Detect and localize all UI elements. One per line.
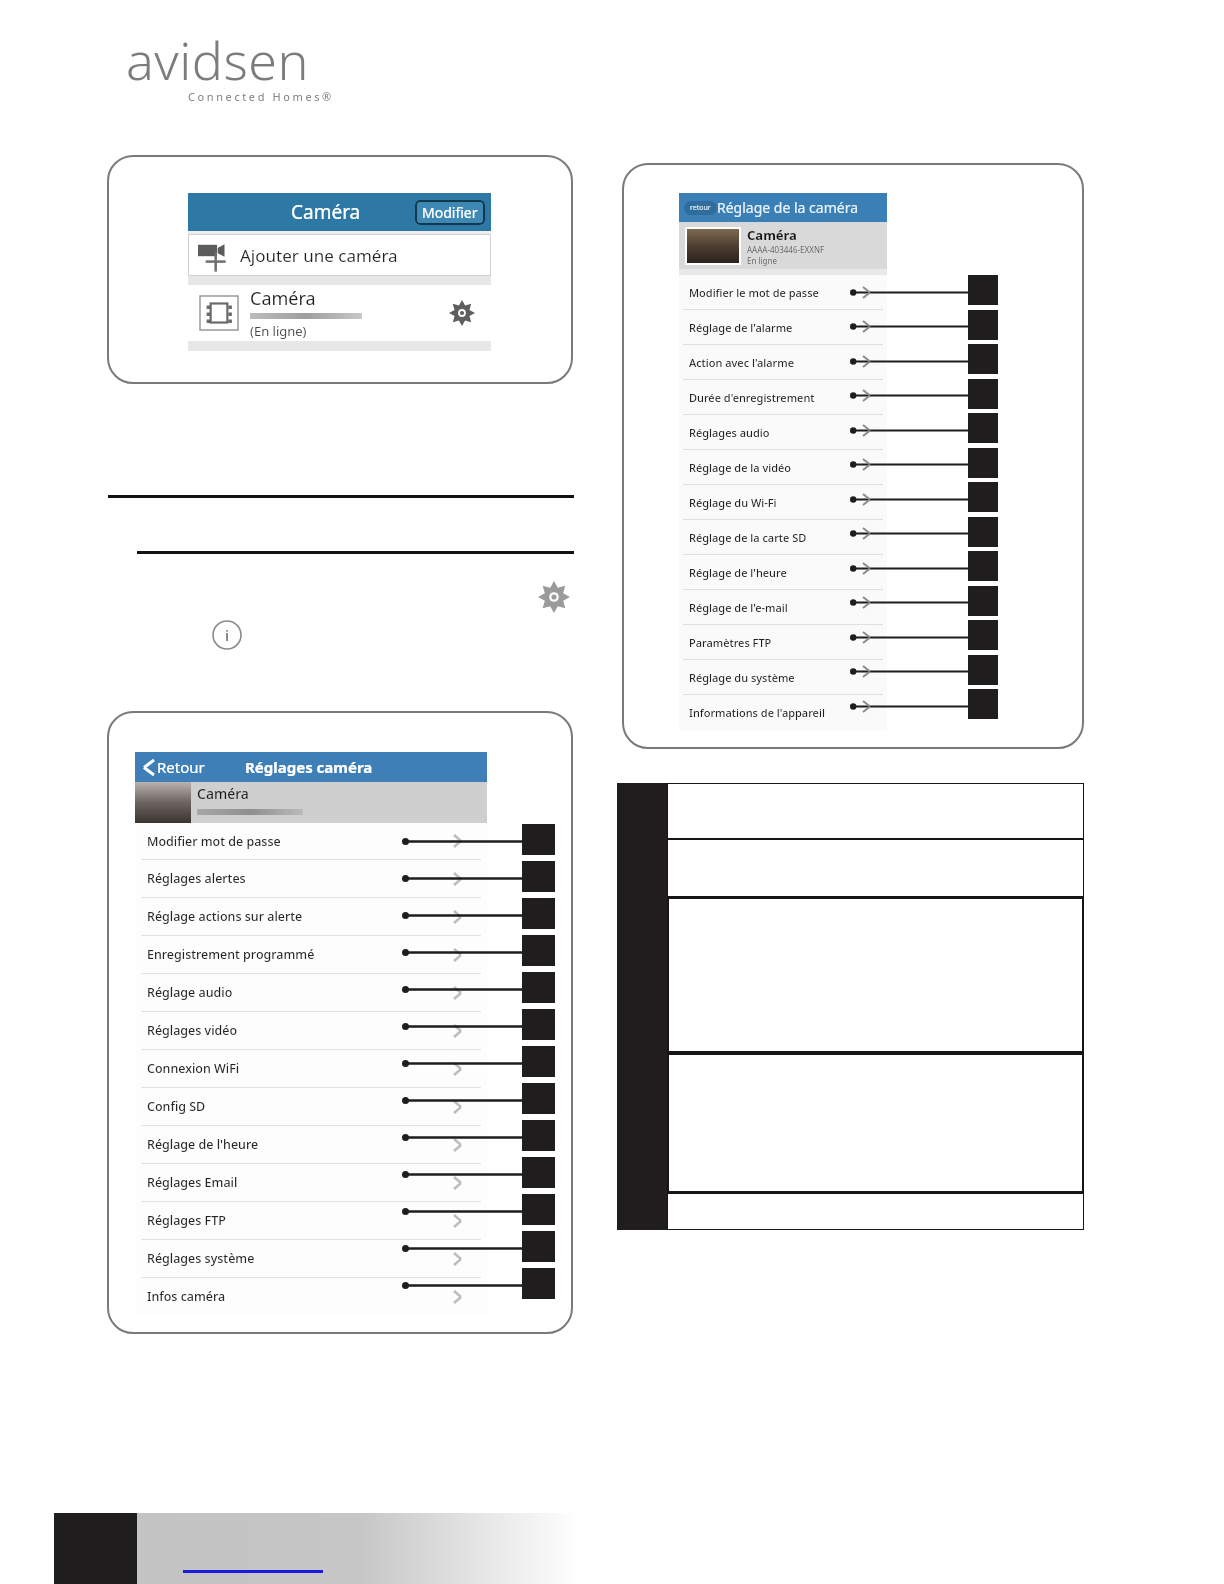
button[interactable]: Modifier <box>415 200 485 225</box>
staticText: Réglages caméra <box>245 757 373 777</box>
staticText: Réglages vidéo <box>147 1022 238 1039</box>
button[interactable]: Réglage de la carte SD <box>679 520 887 555</box>
button[interactable]: Réglages Email <box>135 1164 487 1201</box>
staticText: Caméra <box>250 286 316 311</box>
staticText: Réglages FTP <box>147 1212 226 1229</box>
staticText: Réglages système <box>147 1250 255 1267</box>
staticText: AAAA-403446-EXXNF <box>747 244 825 255</box>
button[interactable]: Réglage audio <box>135 974 487 1011</box>
button[interactable]: Réglage de la vidéo <box>679 450 887 485</box>
button[interactable]: Paramètres caméra <box>449 300 475 326</box>
button[interactable]: Informations <box>212 620 242 650</box>
staticText: Infos caméra <box>147 1288 226 1305</box>
staticText: Caméra <box>747 226 797 244</box>
button[interactable]: Connexion WiFi <box>135 1050 487 1087</box>
staticText: Caméra <box>291 199 361 225</box>
button[interactable]: Réglage de l'heure <box>679 555 887 590</box>
button[interactable]: Durée d'enregistrement <box>679 380 887 415</box>
staticText: Paramètres FTP <box>689 635 772 650</box>
button[interactable]: Réglage de l'e-mail <box>679 590 887 625</box>
button[interactable]: Réglage de l'alarme <box>679 310 887 345</box>
button[interactable]: Caméra <box>188 285 491 341</box>
button[interactable]: Réglages audio <box>679 415 887 450</box>
staticText: retour <box>690 203 711 213</box>
staticText: Connexion WiFi <box>147 1060 240 1077</box>
button[interactable]: Paramètres FTP <box>679 625 887 660</box>
staticText: En ligne <box>747 255 777 266</box>
button[interactable]: Modifier mot de passe <box>135 823 487 859</box>
button[interactable]: Ajouter une caméra <box>188 234 491 276</box>
staticText: Réglage audio <box>147 984 233 1001</box>
staticText: Informations de l'appareil <box>689 705 825 720</box>
staticText: avidsen <box>126 24 309 95</box>
staticText: Config SD <box>147 1098 206 1115</box>
staticText: Connected Homes® <box>188 89 334 104</box>
button[interactable]: Réglages vidéo <box>135 1012 487 1049</box>
staticText: Modifier le mot de passe <box>689 285 819 300</box>
button[interactable]: Réglage du système <box>679 660 887 695</box>
button[interactable]: Réglages FTP <box>135 1202 487 1239</box>
staticText: Réglage du système <box>689 670 795 685</box>
staticText: Enregistrement programmé <box>147 946 315 963</box>
button[interactable]: retour <box>684 201 717 215</box>
staticText: Réglage de l'heure <box>147 1136 259 1153</box>
button[interactable]: Réglage de l'heure <box>135 1126 487 1163</box>
button[interactable]: Retour <box>135 757 487 777</box>
staticText: Réglage de l'heure <box>689 565 787 580</box>
button[interactable]: Réglage actions sur alerte <box>135 898 487 935</box>
staticText: Durée d'enregistrement <box>689 390 815 405</box>
staticText: Ajouter une caméra <box>240 244 398 267</box>
staticText: Modifier mot de passe <box>147 833 281 850</box>
button[interactable]: Réglages <box>538 581 570 613</box>
button[interactable]: Réglage du Wi-Fi <box>679 485 887 520</box>
button[interactable]: Réglages système <box>135 1240 487 1277</box>
staticText: (En ligne) <box>250 322 307 340</box>
staticText: i <box>225 625 230 645</box>
staticText: Réglage de la carte SD <box>689 530 807 545</box>
button[interactable]: Infos caméra <box>135 1278 487 1315</box>
staticText: Réglage de l'alarme <box>689 320 793 335</box>
staticText: Réglage de l'e-mail <box>689 600 788 615</box>
staticText: Réglage du Wi-Fi <box>689 495 777 510</box>
button[interactable]: Modifier le mot de passe <box>679 275 887 310</box>
staticText: Réglages audio <box>689 425 770 440</box>
staticText: Réglage actions sur alerte <box>147 908 303 925</box>
staticText: Réglages Email <box>147 1174 238 1191</box>
staticText: Caméra <box>197 784 249 803</box>
button[interactable]: Config SD <box>135 1088 487 1125</box>
staticText: Modifier <box>422 203 478 222</box>
button[interactable]: Action avec l'alarme <box>679 345 887 380</box>
staticText: Réglages alertes <box>147 870 246 887</box>
staticText: Réglage de la caméra <box>717 198 858 217</box>
button[interactable]: Réglages alertes <box>135 860 487 897</box>
button[interactable]: Informations de l'appareil <box>679 695 887 730</box>
button[interactable]: Enregistrement programmé <box>135 936 487 973</box>
staticText: Action avec l'alarme <box>689 355 795 370</box>
staticText: Réglage de la vidéo <box>689 460 792 475</box>
staticText: Retour <box>157 757 205 777</box>
